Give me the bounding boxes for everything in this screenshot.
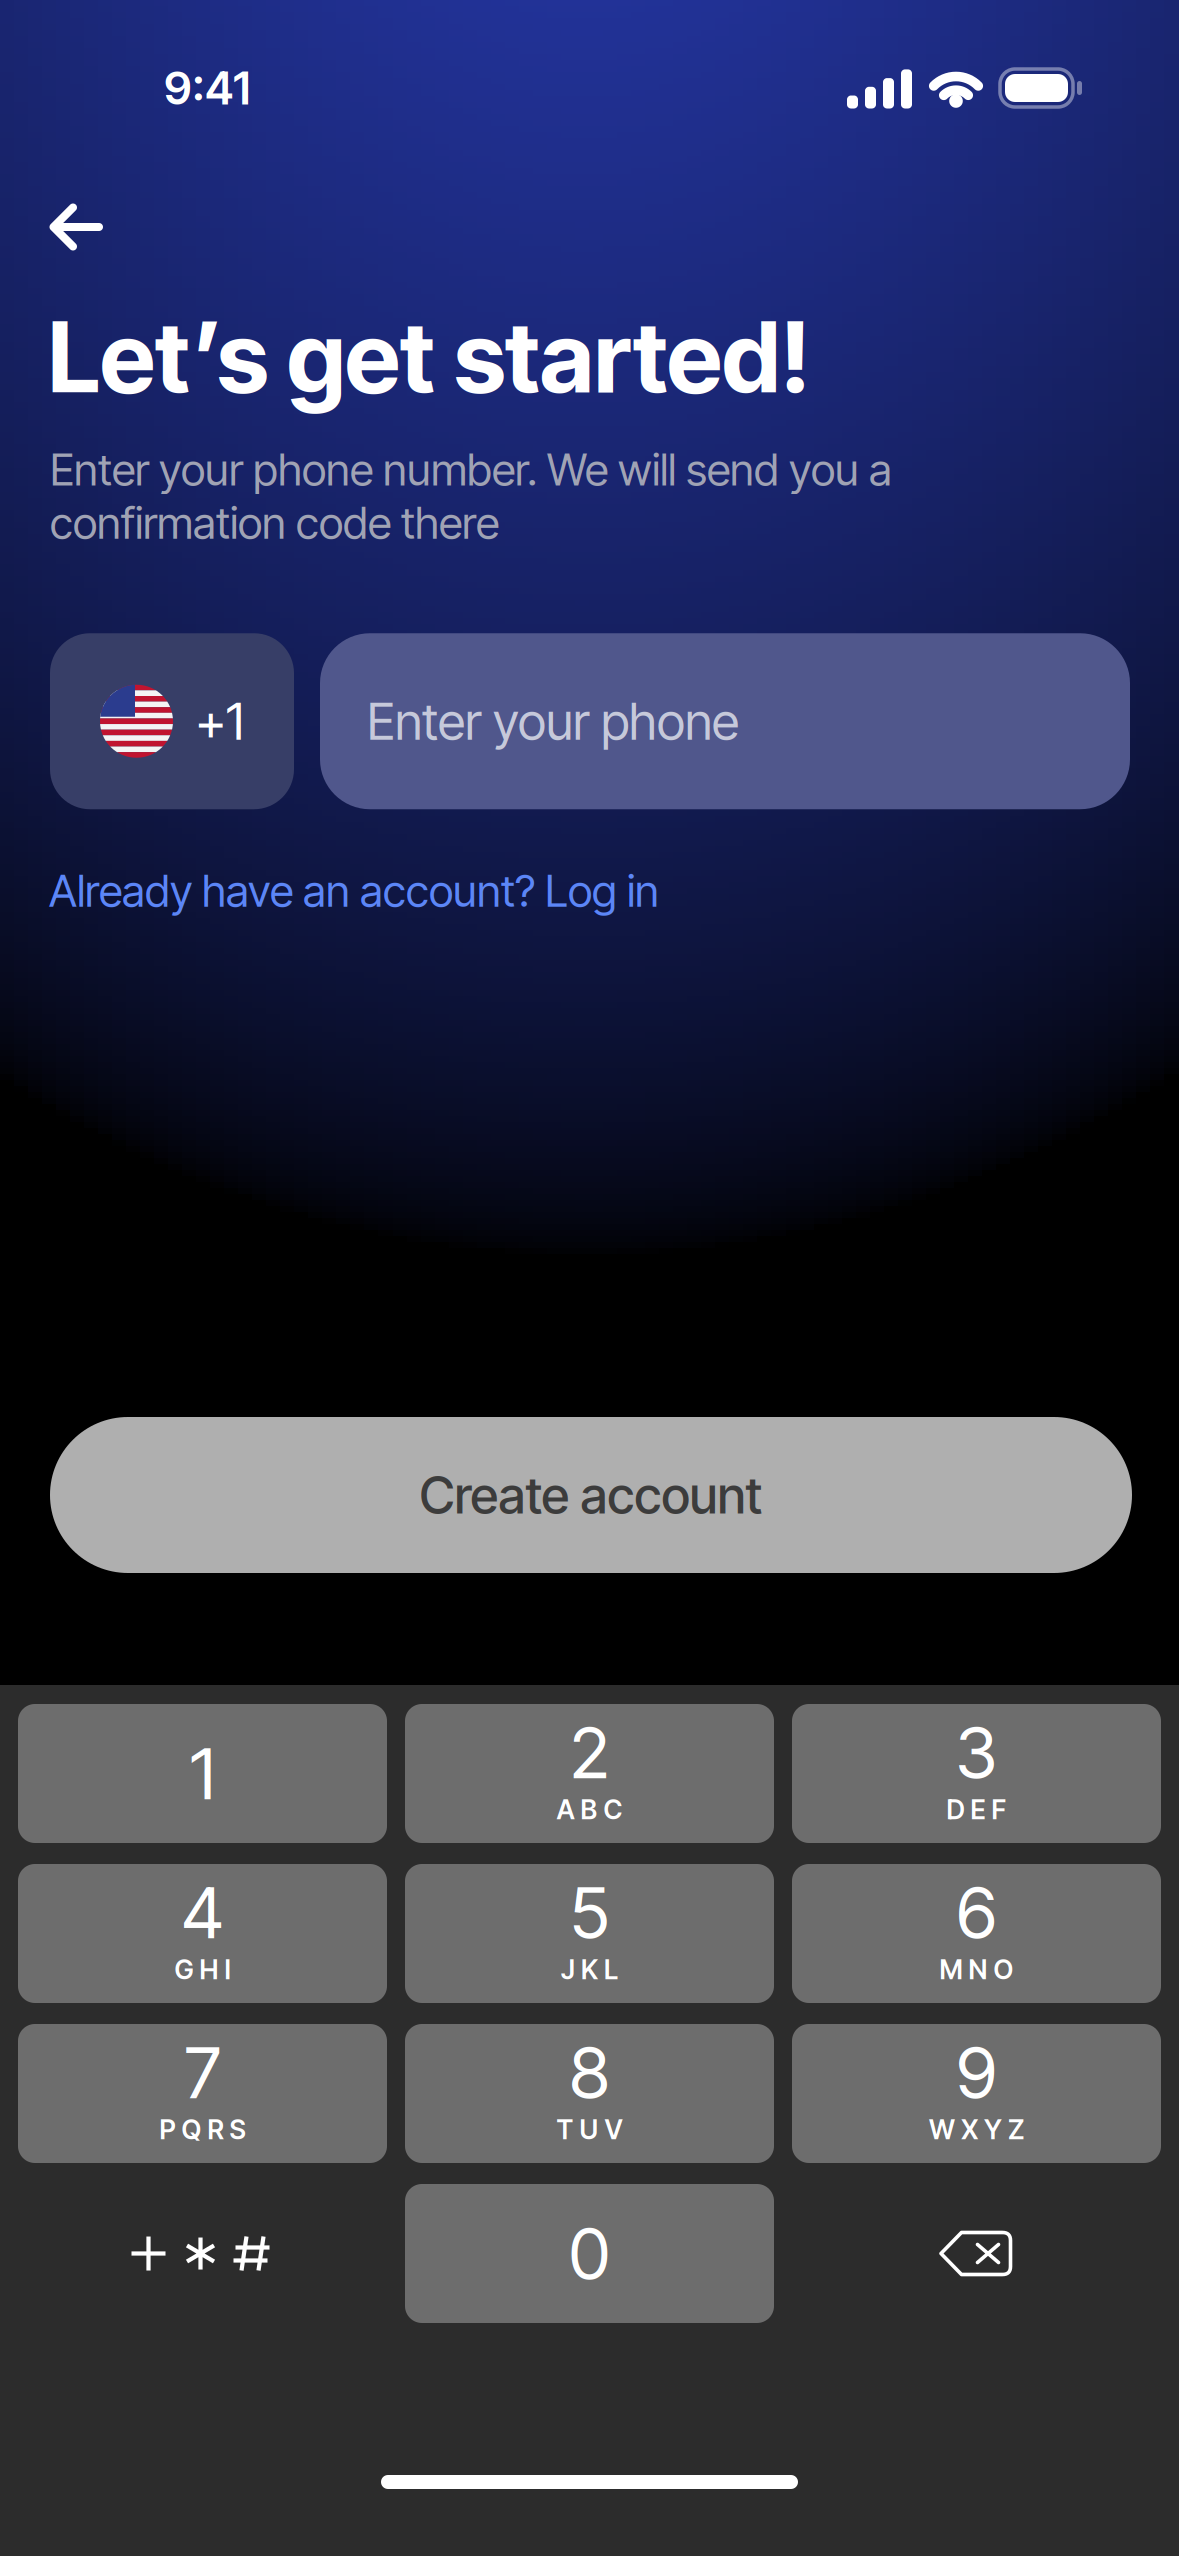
button[interactable]: Back	[0, 178, 134, 276]
button[interactable]: 4	[18, 1864, 387, 2003]
staticText: 3	[955, 1710, 997, 1795]
staticText: 6	[956, 1870, 996, 1955]
button[interactable]: 3	[792, 1704, 1161, 1843]
button[interactable]: Already have an account? Log in	[49, 850, 659, 931]
button[interactable]: 2	[405, 1704, 774, 1843]
staticText: J K L	[561, 1953, 618, 1986]
staticText: Enter your phone number. We will send yo…	[50, 443, 892, 549]
staticText: M N O	[939, 1953, 1013, 1986]
staticText: 0	[569, 2211, 610, 2296]
button[interactable]: 0	[405, 2184, 774, 2323]
button[interactable]: 5	[405, 1864, 774, 2003]
staticText: P Q R S	[159, 2113, 245, 2146]
staticText: W X Y Z	[929, 2113, 1024, 2146]
staticText: Create account	[419, 1464, 762, 1526]
staticText: 2	[570, 1710, 609, 1795]
staticText: 9:41	[164, 61, 250, 115]
staticText: +1	[195, 691, 244, 752]
staticText: T U V	[556, 2113, 622, 2146]
staticText: A B C	[556, 1793, 622, 1826]
staticText: Already have an account? Log in	[49, 864, 659, 917]
button[interactable]: +1	[50, 633, 294, 809]
staticText: Enter your phone	[367, 691, 739, 752]
button[interactable]: Symbols	[18, 2184, 387, 2323]
button[interactable]: Create account	[50, 1417, 1132, 1573]
button[interactable]: Enter your phone	[320, 633, 1130, 809]
staticText: 8	[569, 2030, 609, 2115]
staticText: 5	[570, 1870, 609, 1955]
button[interactable]: 6	[792, 1864, 1161, 2003]
button[interactable]: 9	[792, 2024, 1161, 2163]
staticText: 9	[956, 2030, 996, 2115]
button[interactable]: Delete	[792, 2184, 1161, 2323]
button[interactable]: 7	[18, 2024, 387, 2163]
staticText: 1	[190, 1731, 215, 1816]
button[interactable]: 1	[18, 1704, 387, 1843]
staticText: 7	[184, 2030, 220, 2115]
staticText: Let’s get started!	[48, 298, 811, 416]
staticText: D E F	[946, 1793, 1006, 1826]
button[interactable]: 8	[405, 2024, 774, 2163]
staticText: G H I	[174, 1953, 230, 1986]
staticText: 4	[181, 1870, 223, 1955]
